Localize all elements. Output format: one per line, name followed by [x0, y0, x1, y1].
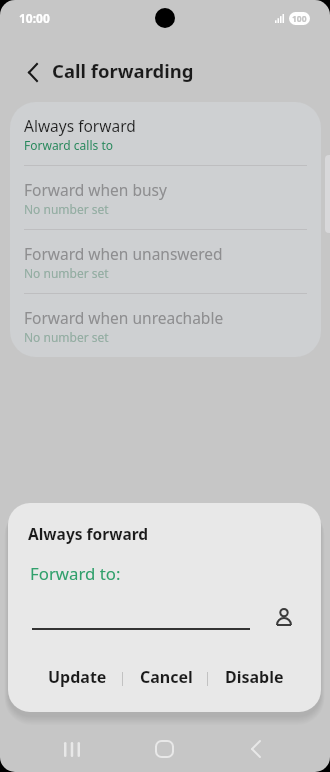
staticText: Always forward [28, 523, 149, 544]
button[interactable]: Home [118, 726, 210, 772]
button[interactable]: Back [12, 53, 52, 92]
staticText: Forward calls to [24, 137, 113, 153]
button[interactable]: Back [210, 726, 302, 772]
button[interactable]: Always forward [10, 102, 321, 165]
staticText: 10:00 [19, 10, 50, 26]
staticText: Forward to: [30, 562, 121, 585]
staticText: Always forward [24, 115, 136, 136]
staticText: Cancel [140, 666, 193, 688]
staticText: Disable [225, 666, 284, 688]
button[interactable]: Choose contact [267, 600, 301, 634]
button[interactable]: Forward when unanswered [10, 230, 321, 293]
button[interactable]: Cancel [121, 657, 211, 697]
staticText: Forward when unanswered [24, 243, 223, 264]
staticText: Forward when unreachable [24, 307, 224, 328]
staticText: Forward when busy [24, 179, 167, 200]
staticText: No number set [24, 201, 109, 217]
staticText: 100 [292, 13, 307, 25]
staticText: Call forwarding [52, 58, 194, 83]
staticText: Update [48, 666, 107, 688]
button[interactable]: Forward when unreachable [10, 294, 321, 357]
button[interactable]: Disable [207, 657, 301, 697]
staticText: No number set [24, 265, 109, 281]
button[interactable]: Update [21, 657, 134, 697]
button[interactable]: Recents [26, 726, 118, 772]
staticText: No number set [24, 329, 109, 345]
button[interactable]: Forward when busy [10, 166, 321, 229]
